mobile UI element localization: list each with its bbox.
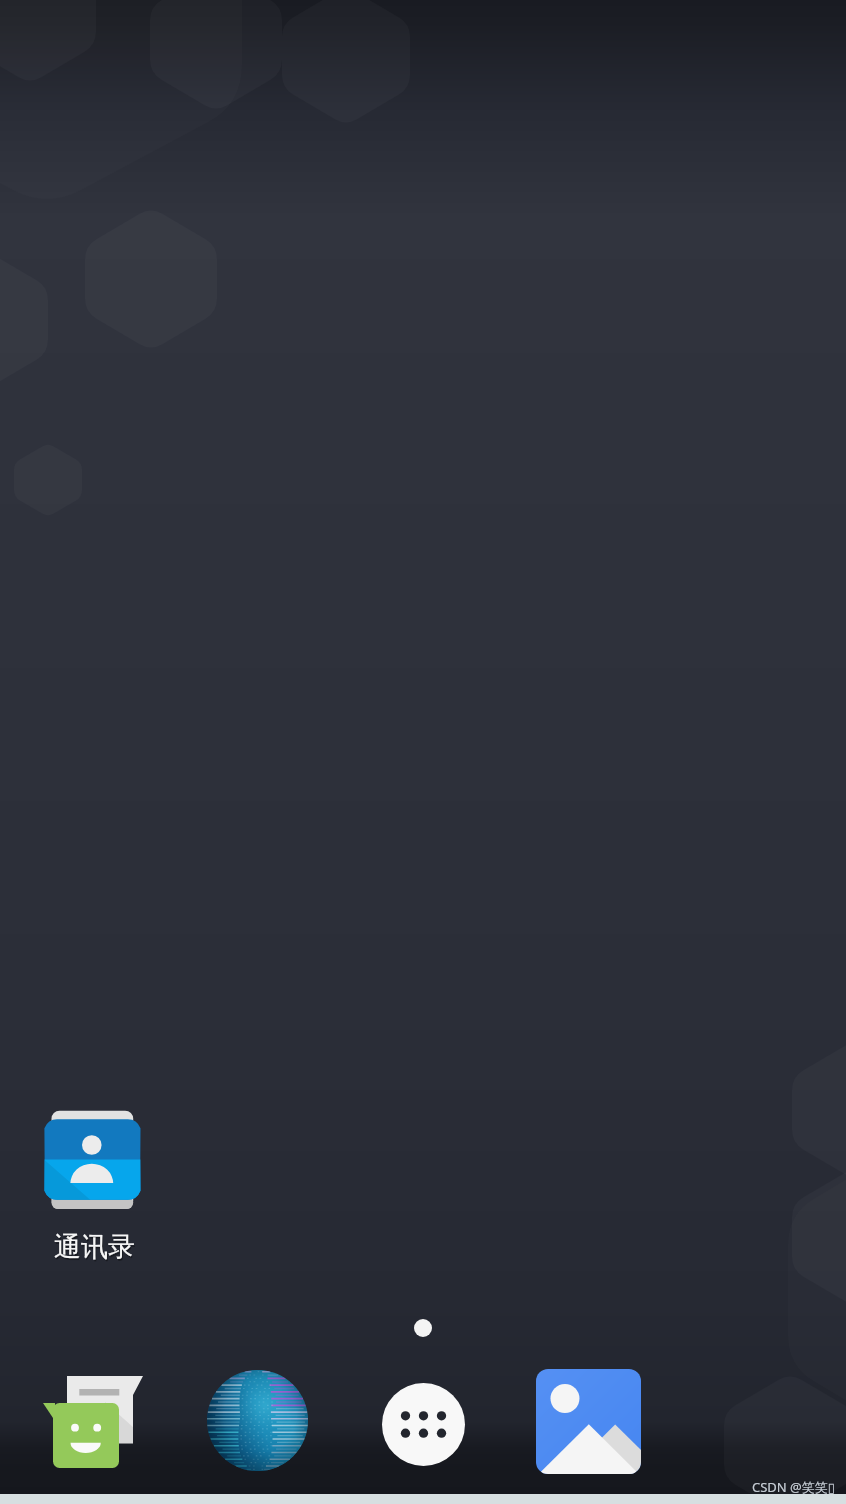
button[interactable]: 通讯录 <box>24 1110 164 1264</box>
button[interactable]: All apps <box>339 1371 508 1477</box>
staticText: CSDN @笑笑▯ <box>752 1478 835 1496</box>
button[interactable]: Messages <box>0 1371 170 1477</box>
staticText: 通讯录 <box>54 1230 135 1264</box>
button[interactable]: Browser <box>170 1371 339 1477</box>
staticText: 通讯录 <box>55 1232 136 1266</box>
button[interactable]: Gallery <box>508 1371 677 1477</box>
